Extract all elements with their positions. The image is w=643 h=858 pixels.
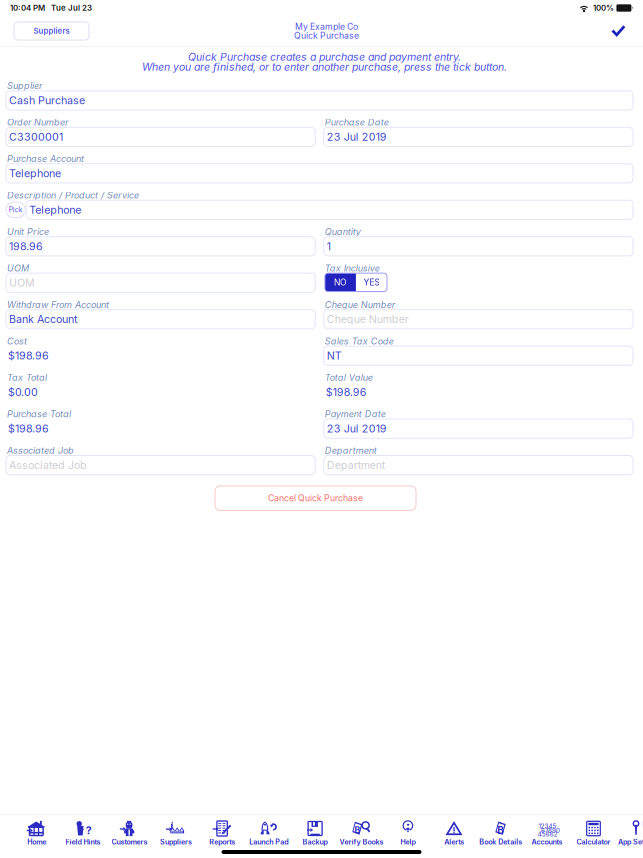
staticText: NT [327,349,342,362]
staticText: Supplier [7,80,42,91]
button[interactable]: Associated Job [6,455,315,475]
staticText: Tax Total [7,372,47,383]
staticText: Backup [303,838,328,846]
staticText: B [354,825,360,835]
button[interactable]: Cheque Number [324,310,633,329]
staticText: Launch Pad [249,838,288,846]
staticText: Cash Purchase [9,94,85,107]
button[interactable]: Telephone [6,164,633,183]
staticText: 45662 [538,830,558,838]
staticText: Department [325,445,377,456]
button[interactable]: Reports [199,819,245,848]
button[interactable]: UOM [6,273,315,292]
button[interactable]: 23 Jul 2019 [324,419,633,438]
staticText: Order Number [7,117,68,128]
staticText: My Example Co [295,21,358,32]
staticText: UOM [7,263,29,274]
staticText: Pick [9,206,23,214]
staticText: Cancel Quick Purchase [268,493,363,503]
staticText: Field Hints [66,838,101,846]
staticText: App Settings [618,838,643,846]
button[interactable]: Save [611,24,626,37]
staticText: Home [27,838,46,846]
staticText: Purchase Account [7,153,84,164]
staticText: $198.96 [8,422,49,435]
staticText: ? [86,824,92,837]
staticText: Payment Date [325,408,386,419]
staticText: Customers [111,838,147,846]
staticText: 23 Jul 2019 [327,130,387,143]
button[interactable]: Launch Pad [245,819,292,848]
staticText: Tax Inclusive [325,263,380,274]
staticText: Withdraw From Account [7,299,109,310]
staticText: Alerts [444,838,464,846]
staticText: Verify Books [339,838,383,846]
staticText: C3300001 [9,130,63,143]
button[interactable]: Telephone [26,200,633,219]
staticText: $198.96 [326,386,367,399]
staticText: $0.00 [8,386,38,399]
button[interactable]: Cash Purchase [6,91,633,110]
staticText: Quick Purchase creates a purchase and pa… [188,50,461,63]
button[interactable]: C3300001 [6,127,315,146]
staticText: Telephone [29,203,81,216]
button[interactable]: Alerts [431,819,477,848]
button[interactable]: YES [356,273,387,291]
staticText: Accounts [532,838,563,846]
staticText: Suppliers [160,838,192,846]
staticText: Total Value [325,372,373,383]
staticText: Associated Job [9,459,87,471]
button[interactable]: Department [324,455,633,475]
staticText: When you are finished, or to enter anoth… [142,60,507,73]
button[interactable]: Customers [106,819,153,848]
staticText: Cheque Number [327,313,409,326]
button[interactable]: B [338,819,385,848]
staticText: Quantity [325,226,361,237]
button[interactable]: App Settings [617,819,643,848]
button[interactable]: Suppliers [14,22,89,40]
staticText: NO [334,277,347,287]
staticText: $198.96 [8,349,49,362]
staticText: 10:04 PM Tue Jul 23 [10,3,92,13]
button[interactable]: Home [13,819,60,848]
button[interactable]: 1 [324,237,633,256]
button[interactable]: 23 Jul 2019 [324,127,633,146]
button[interactable]: Calculator [570,819,617,848]
button[interactable]: ? [60,819,106,848]
staticText: 23 Jul 2019 [327,422,387,435]
staticText: 12345 [538,822,556,830]
staticText: Purchase Date [325,117,389,128]
staticText: YES [363,277,379,287]
staticText: Suppliers [33,26,69,36]
staticText: Department [327,459,385,471]
button[interactable]: 198.96 [6,237,315,256]
staticText: Calculator [576,838,610,846]
staticText: UOM [9,276,35,289]
button[interactable]: B [477,819,524,848]
button[interactable]: Backup [292,819,338,848]
button[interactable]: Help [385,819,431,848]
button[interactable]: Cancel Quick Purchase [215,486,416,510]
button[interactable]: NO [325,273,356,291]
button[interactable]: NT [324,346,633,365]
staticText: Purchase Total [7,408,71,419]
button[interactable]: Pick [6,202,25,218]
staticText: Bank Account [9,313,77,326]
staticText: Quick Purchase [294,30,359,41]
staticText: Telephone [9,167,61,180]
button[interactable]: Bank Account [6,310,315,329]
staticText: 100% [589,3,616,13]
button[interactable]: 12345 [524,819,570,848]
button[interactable]: Suppliers [153,819,199,848]
staticText: Unit Price [7,226,49,237]
staticText: B [497,824,504,836]
staticText: Cheque Number [325,299,395,310]
staticText: Cost [7,336,27,347]
staticText: Description / Product / Service [7,190,139,201]
staticText: Sales Tax Code [325,336,394,347]
staticText: 67890 [541,827,560,834]
staticText: Book Details [479,838,522,846]
staticText: 1 [327,240,331,253]
staticText: Reports [209,838,235,846]
staticText: 198.96 [9,240,43,253]
